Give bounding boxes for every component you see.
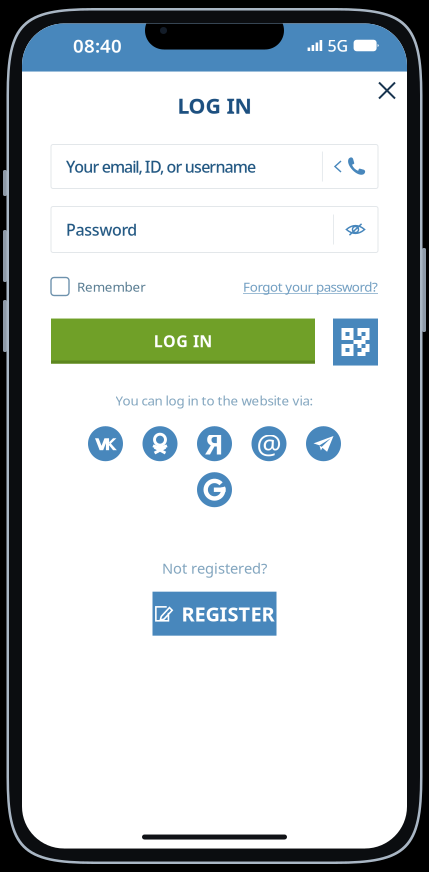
staticText: Remember: [77, 278, 146, 295]
button[interactable]: REGISTER: [152, 592, 276, 636]
button[interactable]: Yandex: [197, 426, 232, 461]
button[interactable]: LOG IN: [51, 318, 315, 363]
staticText: Your email, ID, or username: [66, 156, 256, 177]
button[interactable]: Forgot your password?: [243, 278, 378, 295]
button[interactable]: VK: [88, 426, 123, 461]
staticText: Password: [66, 219, 137, 240]
staticText: R: [205, 425, 223, 462]
button[interactable]: Show password: [333, 214, 378, 244]
button[interactable]: Remember: [51, 277, 146, 295]
staticText: You can log in to the website via:: [115, 391, 313, 409]
staticText: 5G: [328, 35, 349, 56]
button[interactable]: Odnoklassniki: [142, 426, 177, 461]
button[interactable]: Mail.ru: [251, 426, 286, 461]
staticText: LOG IN: [154, 330, 212, 352]
button[interactable]: Close: [369, 72, 405, 108]
button[interactable]: Telegram: [306, 426, 341, 461]
staticText: LOG IN: [177, 91, 251, 120]
staticText: Not registered?: [162, 558, 267, 578]
staticText: REGISTER: [181, 600, 274, 627]
button[interactable]: Log in with phone number: [322, 151, 378, 181]
staticText: @: [256, 425, 281, 462]
staticText: 08:40: [73, 33, 122, 58]
staticText: Forgot your password?: [243, 278, 378, 295]
button[interactable]: Log in with QR code: [333, 318, 378, 365]
button[interactable]: Google: [197, 472, 232, 507]
